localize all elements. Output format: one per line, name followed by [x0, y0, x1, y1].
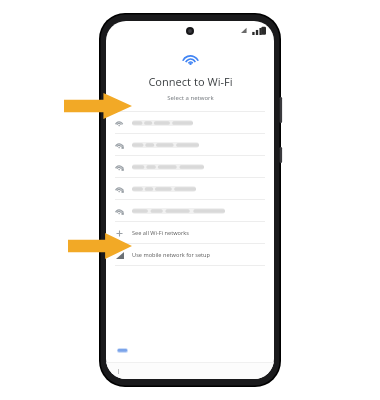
staticText: Connect to Wi-Fi	[148, 74, 233, 89]
staticText: See all Wi-Fi networks	[132, 229, 189, 237]
staticText: Select a network	[167, 94, 214, 102]
button[interactable]: Wi-Fi network	[106, 134, 274, 155]
button[interactable]: Wi-Fi network	[106, 112, 274, 133]
button[interactable]	[115, 346, 130, 355]
button[interactable]: Wi-Fi network	[106, 200, 274, 221]
button[interactable]: Wi-Fi network	[106, 178, 274, 199]
button[interactable]: Use mobile network for setup	[106, 244, 274, 265]
staticText: Use mobile network for setup	[132, 251, 210, 259]
button[interactable]: See all Wi-Fi networks	[106, 222, 274, 243]
button[interactable]: Wi-Fi network	[106, 156, 274, 177]
